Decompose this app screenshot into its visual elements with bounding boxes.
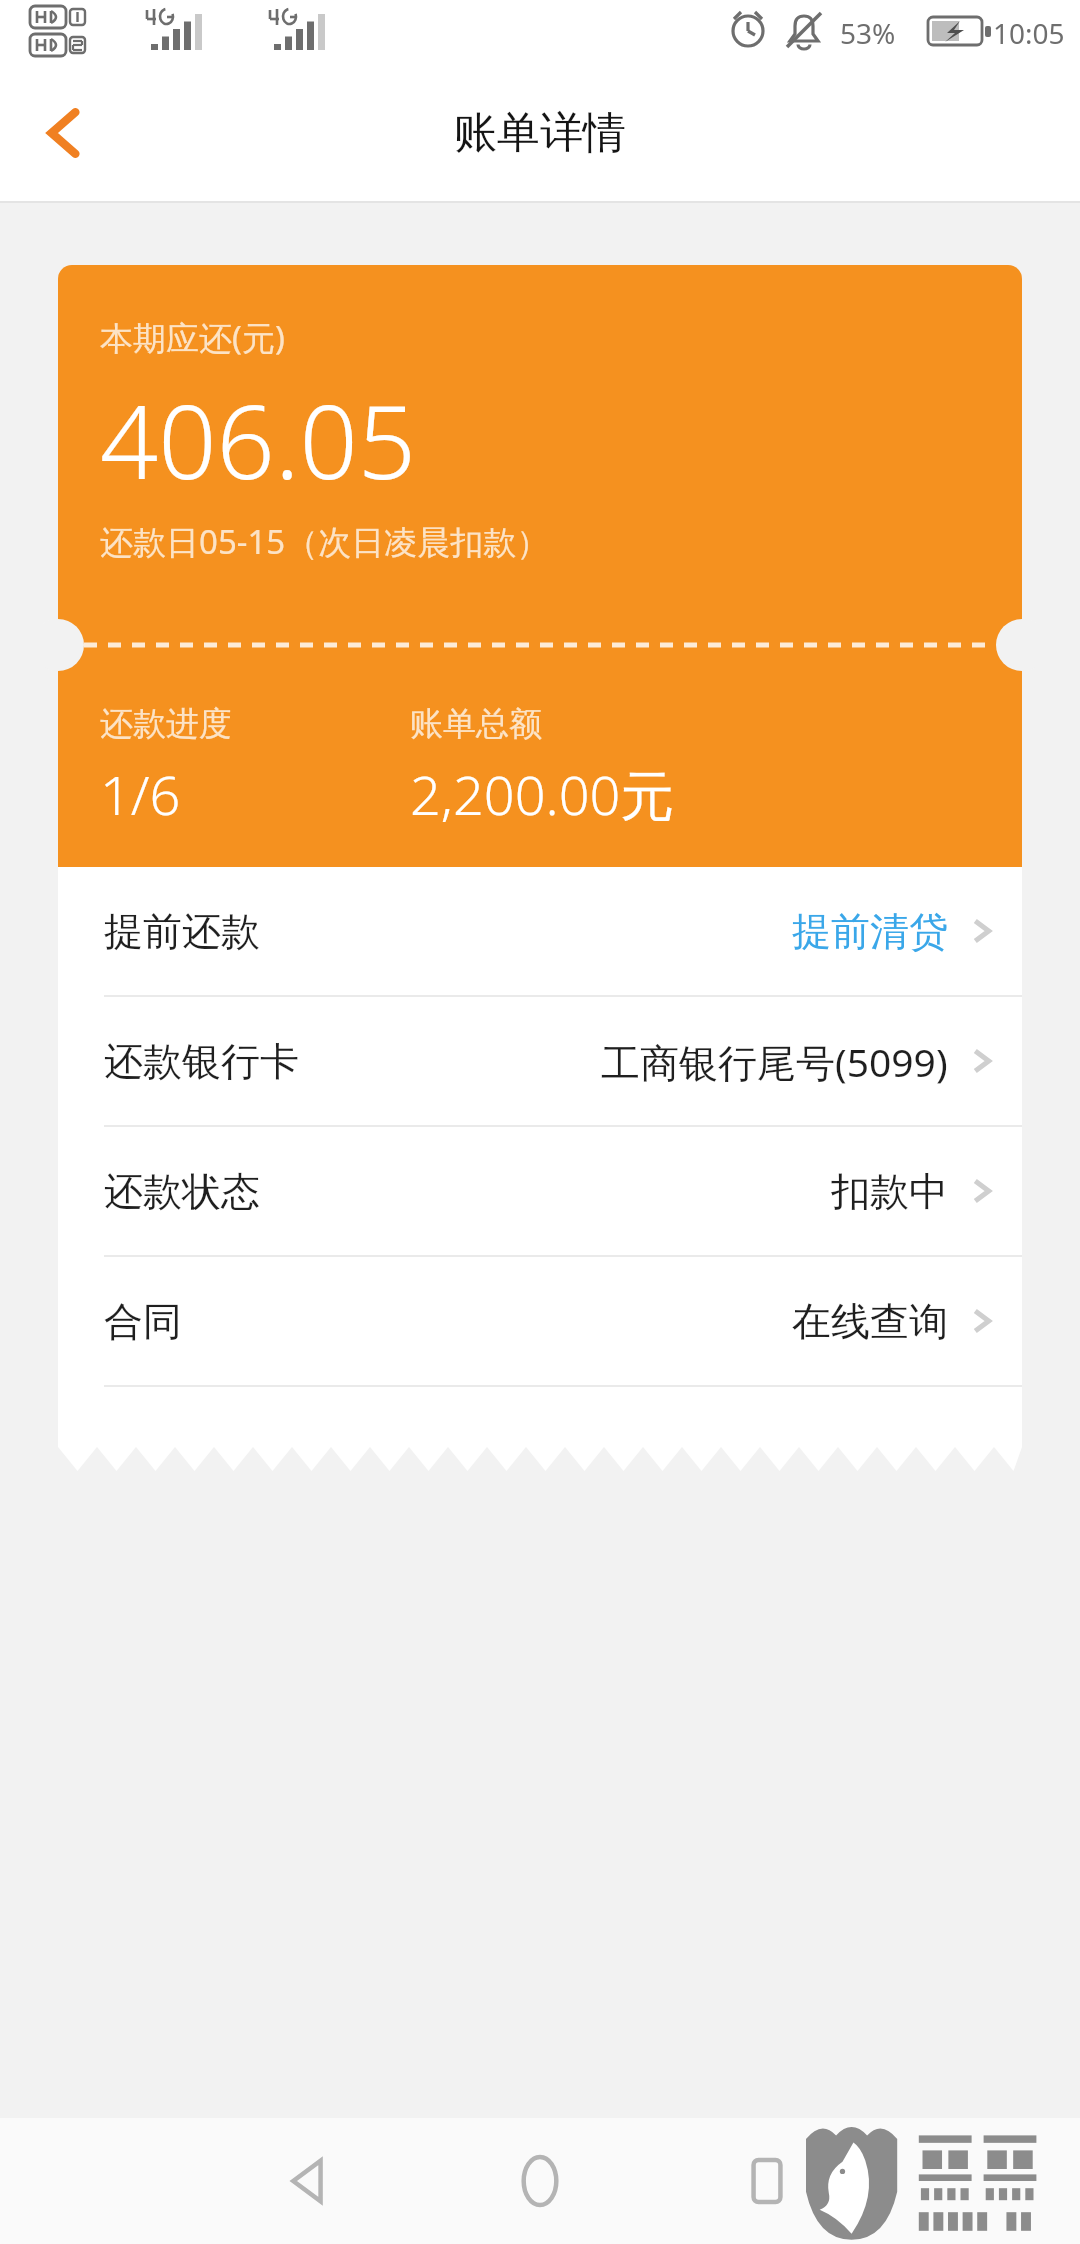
staticText: 账单总额 bbox=[410, 703, 542, 745]
staticText: 提前清贷 bbox=[792, 907, 948, 956]
staticText: 1/6 bbox=[100, 757, 181, 831]
button[interactable]: Back bbox=[255, 2126, 365, 2236]
staticText: 406.05 bbox=[100, 370, 417, 509]
button[interactable]: 合同 bbox=[58, 1257, 1022, 1385]
staticText: 扣款中 bbox=[831, 1167, 948, 1216]
staticText: 在线查询 bbox=[792, 1297, 948, 1346]
staticText: 还款日05-15（次日凌晨扣款） bbox=[100, 519, 550, 564]
staticText: 还款状态 bbox=[104, 1167, 260, 1216]
button[interactable]: Recent apps bbox=[712, 2126, 822, 2236]
button[interactable]: 还款状态 bbox=[58, 1127, 1022, 1255]
staticText: 工商银行尾号(5099) bbox=[601, 1035, 948, 1088]
button[interactable]: Back bbox=[14, 83, 114, 183]
staticText: 本期应还(元) bbox=[100, 315, 285, 360]
staticText: 账单详情 bbox=[454, 106, 626, 160]
staticText: 合同 bbox=[104, 1297, 182, 1346]
staticText: 还款进度 bbox=[100, 703, 232, 745]
staticText: 还款银行卡 bbox=[104, 1037, 299, 1086]
staticText: 提前还款 bbox=[104, 907, 260, 956]
staticText: 53% bbox=[840, 14, 896, 52]
staticText: 10:05 bbox=[993, 14, 1065, 52]
staticText: 2,200.00元 bbox=[410, 757, 675, 831]
button[interactable]: 提前还款 bbox=[58, 867, 1022, 995]
button[interactable]: 还款银行卡 bbox=[58, 997, 1022, 1125]
button[interactable]: Home bbox=[485, 2126, 595, 2236]
